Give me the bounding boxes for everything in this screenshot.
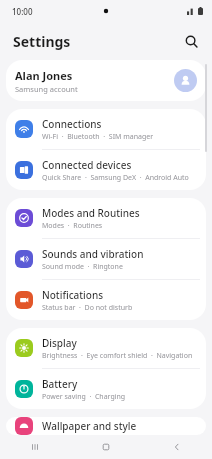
staticText: Brightness · Eye comfort shield · Naviga… xyxy=(42,351,198,361)
button[interactable]: Sounds and vibration xyxy=(6,239,206,279)
button[interactable]: Notifications xyxy=(6,280,206,320)
staticText: Modes · Routines xyxy=(42,221,103,231)
staticText: Connected devices xyxy=(42,158,132,172)
button[interactable]: Back xyxy=(141,435,212,459)
staticText: 10:00 xyxy=(12,6,33,17)
button[interactable]: Battery xyxy=(6,369,206,409)
button[interactable]: Display xyxy=(6,328,206,368)
button[interactable]: Recents xyxy=(0,435,70,459)
staticText: Sounds and vibration xyxy=(42,247,144,261)
staticText: Power saving · Charging xyxy=(42,392,126,402)
button[interactable]: Connections xyxy=(6,109,206,149)
staticText: Wallpaper and style xyxy=(42,419,137,433)
button[interactable]: Home xyxy=(70,435,141,459)
staticText: Samsung account xyxy=(15,84,78,94)
button[interactable]: Modes and Routines xyxy=(6,198,206,238)
button[interactable]: Search xyxy=(178,28,204,54)
staticText: Alan Jones xyxy=(15,68,73,83)
button[interactable]: Wallpaper and style xyxy=(6,417,206,435)
staticText: Notifications xyxy=(42,288,104,302)
staticText: Status bar · Do not disturb xyxy=(42,303,133,313)
button[interactable]: Connected devices xyxy=(6,150,206,190)
staticText: Quick Share · Samsung DeX · Android Auto xyxy=(42,173,189,183)
staticText: Battery xyxy=(42,377,78,391)
staticText: Sound mode · Ringtone xyxy=(42,262,123,272)
staticText: Display xyxy=(42,336,77,350)
staticText: Settings xyxy=(13,32,71,51)
staticText: Modes and Routines xyxy=(42,206,140,220)
button[interactable]: Alan Jones xyxy=(6,60,206,101)
staticText: Connections xyxy=(42,117,102,131)
staticText: Wi-Fi · Bluetooth · SIM manager xyxy=(42,132,154,142)
